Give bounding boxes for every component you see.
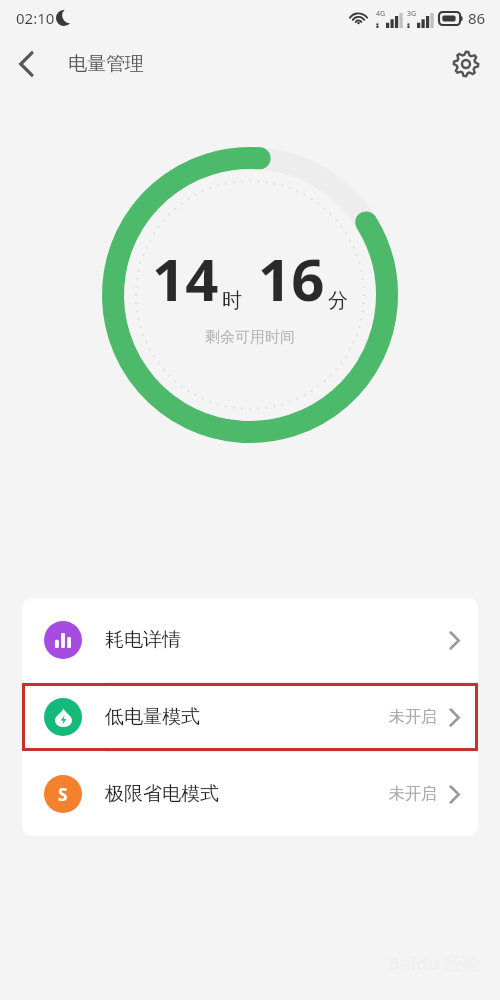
- staticText: 时: [222, 288, 242, 313]
- staticText: 4G: [376, 9, 386, 19]
- button[interactable]: 耗电详情: [22, 598, 478, 682]
- staticText: 耗电详情: [105, 628, 181, 652]
- button[interactable]: Settings: [444, 42, 488, 86]
- staticText: 未开启: [389, 707, 437, 727]
- staticText: 低电量模式: [105, 705, 200, 729]
- staticText: S: [58, 783, 68, 806]
- staticText: 02:10: [16, 8, 55, 28]
- staticText: 分: [328, 288, 348, 313]
- button[interactable]: Back: [0, 38, 52, 90]
- staticText: 极限省电模式: [105, 782, 219, 806]
- staticText: 86: [468, 8, 486, 28]
- staticText: 3G: [407, 9, 417, 19]
- button[interactable]: S: [22, 752, 478, 836]
- staticText: 16: [258, 239, 325, 318]
- staticText: 电量管理: [68, 52, 144, 76]
- staticText: 未开启: [389, 784, 437, 804]
- button[interactable]: 低电量模式: [22, 683, 478, 751]
- staticText: 14: [152, 239, 219, 318]
- staticText: 剩余可用时间: [205, 328, 295, 347]
